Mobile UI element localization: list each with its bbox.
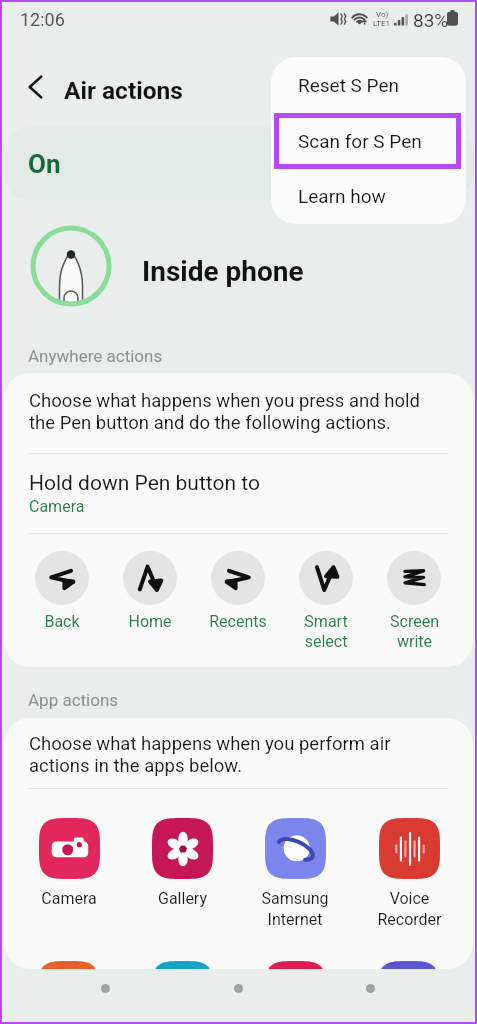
button[interactable]: Samsung Internet [239,818,351,929]
button[interactable]: Scan for S Pen [271,113,466,169]
button[interactable]: On [4,127,473,200]
button[interactable]: Navigation [87,970,123,1006]
button[interactable]: Home [106,551,194,631]
button[interactable]: Navigation [220,970,256,1006]
button[interactable]: Hold down Pen button to [4,470,473,522]
staticText: Vo) [376,10,389,19]
staticText: Inside phone [142,255,304,288]
button[interactable]: Smart select [282,551,370,651]
staticText: Air actions [64,76,183,105]
button[interactable]: Camera [13,818,125,908]
staticText: Voice Recorder [377,889,442,929]
staticText: Anywhere actions [28,346,163,366]
button[interactable]: Reset S Pen [271,57,466,113]
button[interactable]: Navigation [352,970,388,1006]
button[interactable]: Back [18,551,106,631]
staticText: Camera [41,889,97,908]
button[interactable] [38,961,99,969]
button[interactable] [378,961,439,969]
button[interactable]: Gallery [126,818,238,908]
staticText: App actions [28,690,119,710]
button[interactable] [152,961,213,969]
staticText: Smart select [304,612,348,651]
staticText: Reset S Pen [298,74,400,96]
staticText: Back [44,612,80,631]
staticText: Samsung Internet [261,889,329,929]
button[interactable]: Back [18,69,54,105]
button[interactable]: Inside phone [0,212,477,316]
staticText: Home [128,612,172,631]
button[interactable]: Recents [194,551,282,631]
button[interactable]: Voice Recorder [353,818,465,929]
staticText: Hold down Pen button to [29,471,260,496]
staticText: Learn how [298,185,386,207]
staticText: Camera [29,497,85,516]
button[interactable]: Learn how [271,168,466,224]
staticText: Choose what happens when you perform air… [29,733,391,777]
staticText: Recents [209,612,267,631]
staticText: LTE1 [373,19,391,28]
staticText: Scan for S Pen [298,130,422,152]
staticText: 83% [413,9,449,31]
button[interactable]: Screen write [370,551,458,651]
staticText: Choose what happens when you press and h… [29,390,420,434]
button[interactable] [265,961,326,969]
staticText: Screen write [390,612,439,651]
staticText: Gallery [158,889,207,908]
staticText: On [28,149,61,179]
staticText: 12:06 [20,9,65,30]
